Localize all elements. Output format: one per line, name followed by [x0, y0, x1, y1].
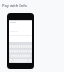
button[interactable]: Keyboard [9, 42, 32, 63]
staticText: Pay with Info [2, 3, 28, 8]
